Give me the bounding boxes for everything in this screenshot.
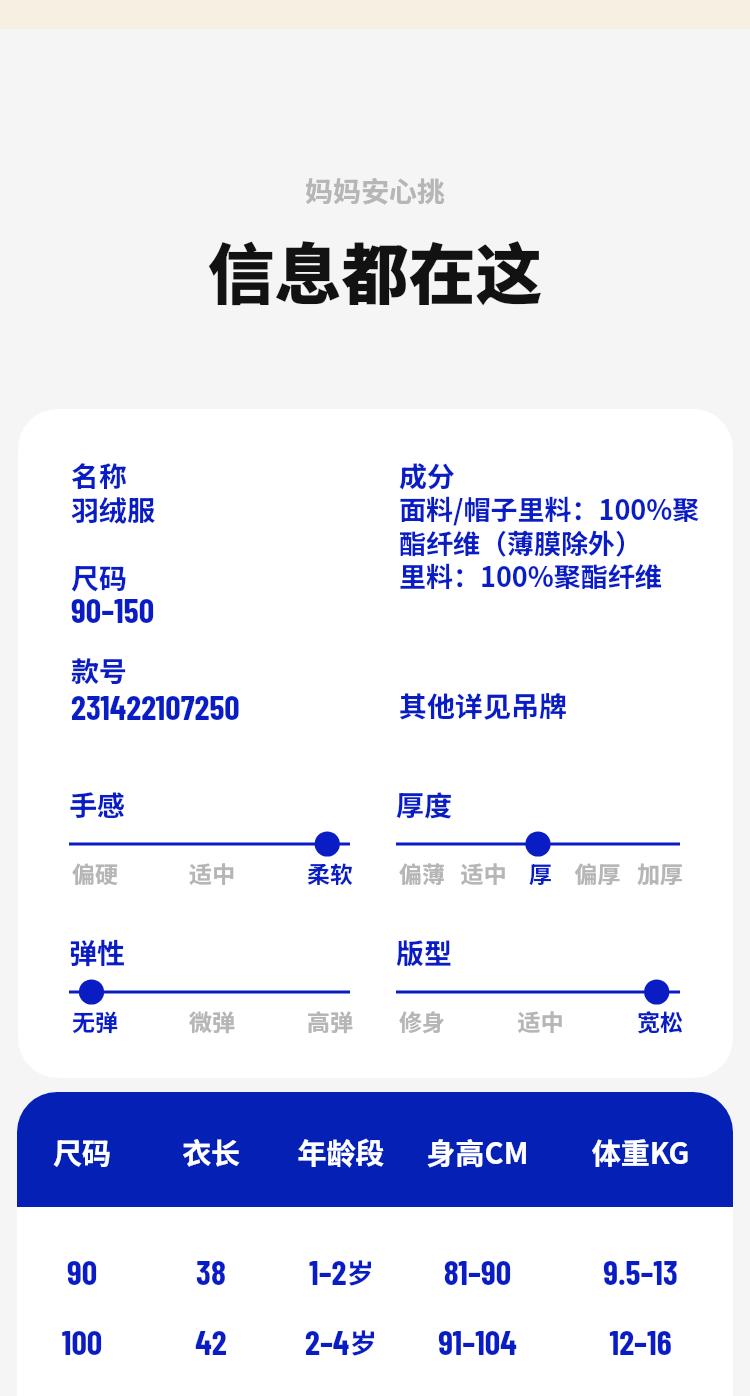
staticText: 尺码 — [17, 1130, 147, 1172]
staticText: 适中 — [165, 856, 259, 889]
button[interactable]: 弹性 — [69, 932, 350, 1045]
staticText: 款号 — [71, 650, 128, 691]
staticText: 偏硬 — [72, 856, 165, 889]
staticText: 无弹 — [72, 1004, 165, 1037]
staticText: 尺码 — [71, 557, 128, 598]
staticText: 成分 — [399, 455, 456, 496]
staticText: 面料/帽子里料：100%聚 酯纤维（薄膜除外） 里料：100%聚酯纤维 — [399, 489, 700, 594]
staticText: 90–150 — [71, 589, 155, 630]
button[interactable]: 厚度 — [396, 784, 680, 897]
staticText: 9.5–13 — [548, 1251, 733, 1292]
button[interactable]: 尺码 — [17, 1092, 733, 1207]
staticText: 手感 — [69, 784, 126, 825]
staticText: 100 — [17, 1321, 147, 1362]
staticText: 岁 — [350, 1322, 377, 1361]
staticText: 年龄段 — [275, 1130, 407, 1172]
staticText: 宽松 — [588, 1004, 683, 1037]
staticText: 岁 — [347, 1252, 374, 1291]
staticText: 羽绒服 — [71, 489, 156, 530]
staticText: 81–90 — [407, 1251, 548, 1292]
staticText: 231422107250 — [71, 686, 240, 727]
staticText: 适中 — [455, 856, 512, 889]
staticText: 修身 — [399, 1004, 493, 1037]
staticText: 91–104 — [407, 1321, 548, 1362]
staticText: 信息都在这 — [0, 221, 750, 318]
staticText: 38 — [147, 1251, 275, 1292]
staticText: 厚度 — [396, 784, 453, 825]
staticText: 偏厚 — [569, 856, 626, 889]
button[interactable]: 版型 — [396, 932, 680, 1045]
staticText: 加厚 — [626, 856, 683, 889]
staticText: 12–16 — [548, 1321, 733, 1362]
button[interactable]: 手感 — [69, 784, 350, 897]
staticText: 名称 — [71, 455, 128, 496]
staticText: 90 — [17, 1251, 147, 1292]
staticText: 适中 — [493, 1004, 588, 1037]
staticText: 偏薄 — [399, 856, 455, 889]
staticText: 其他详见吊牌 — [399, 685, 568, 726]
staticText: 弹性 — [69, 932, 126, 973]
staticText: 衣长 — [147, 1130, 275, 1172]
staticText: 版型 — [396, 932, 453, 973]
staticText: 微弹 — [165, 1004, 259, 1037]
staticText: 42 — [147, 1321, 275, 1362]
staticText: 2–4 — [305, 1321, 350, 1362]
staticText: 1–2 — [309, 1251, 347, 1292]
staticText: 高弹 — [259, 1004, 353, 1037]
staticText: 身高CM — [407, 1130, 548, 1172]
staticText: 柔软 — [259, 856, 353, 889]
staticText: 厚 — [512, 856, 569, 889]
staticText: 妈妈安心挑 — [0, 170, 750, 211]
staticText: 体重KG — [548, 1130, 733, 1172]
